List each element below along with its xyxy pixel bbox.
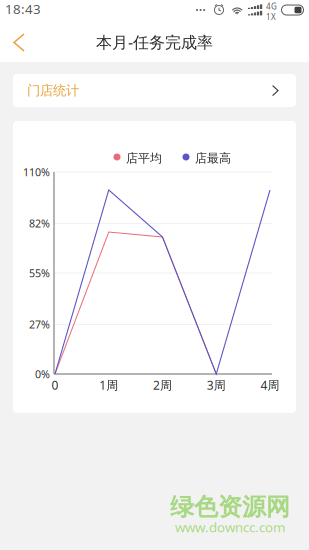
staticText: 55% — [29, 266, 50, 280]
staticText: 4周 — [260, 377, 279, 393]
staticText: 4G — [266, 1, 277, 12]
staticText: 3周 — [207, 377, 226, 393]
staticText: 店最高 — [195, 151, 231, 166]
staticText: 本月-任务完成率 — [96, 31, 213, 53]
button[interactable]: Back — [0, 22, 38, 62]
staticText: 店平均 — [126, 151, 162, 166]
staticText: 门店统计 — [27, 82, 79, 99]
staticText: 82% — [29, 216, 50, 230]
staticText: 18:43 — [5, 0, 41, 18]
staticText: 0 — [51, 377, 58, 393]
button[interactable]: 门店统计 — [13, 74, 296, 107]
staticText: www.downcc.com — [175, 518, 285, 536]
staticText: 2周 — [153, 377, 172, 393]
staticText: 绿色资源网 — [170, 492, 290, 522]
staticText: 27% — [29, 317, 50, 331]
staticText: 0% — [35, 367, 50, 381]
staticText: 1周 — [99, 377, 118, 393]
staticText: 110% — [23, 165, 50, 179]
staticText: 1X — [266, 12, 276, 22]
